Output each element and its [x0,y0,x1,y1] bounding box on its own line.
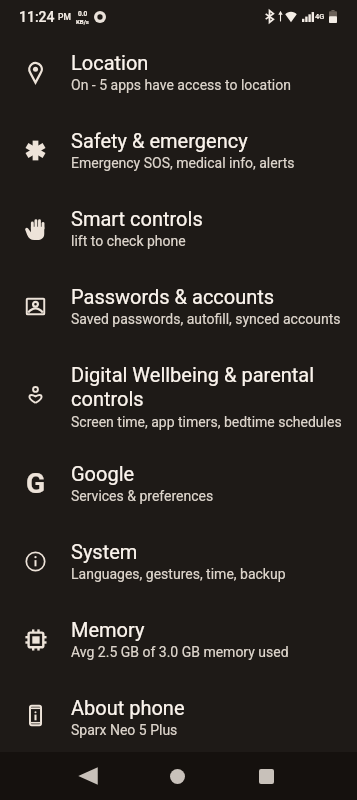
staticText: About phone [71,696,185,719]
staticText: 0.0 [78,10,88,18]
staticText: 11:24 [19,9,55,25]
staticText: Smart controls [71,207,203,230]
staticText: Saved passwords, autofill, synced accoun… [71,311,341,327]
button[interactable]: Home [155,752,200,800]
button[interactable]: Smart controls [0,189,357,267]
staticText: Safety & emergency [71,129,248,152]
button[interactable]: Digital Wellbeing & parental controls [0,345,357,444]
staticText: 4G [315,12,325,21]
staticText: Digital Wellbeing & parental controls [71,363,353,411]
button[interactable]: Location [0,33,357,111]
button[interactable]: About phone [0,678,357,752]
staticText: Memory [71,618,145,641]
staticText: Sparx Neo 5 Plus [71,722,178,738]
staticText: lift to check phone [71,233,186,249]
staticText: Services & preferences [71,488,214,504]
staticText: On - 5 apps have access to location [71,77,291,93]
button[interactable]: Memory [0,600,357,678]
staticText: Screen time, app timers, bedtime schedul… [71,414,342,430]
button[interactable]: Back [66,752,111,800]
staticText: KB/s [76,18,89,25]
staticText: Location [71,51,149,74]
button[interactable]: Safety & emergency [0,111,357,189]
staticText: Avg 2.5 GB of 3.0 GB memory used [71,644,289,660]
staticText: G [26,467,46,500]
staticText: Emergency SOS, medical info, alerts [71,155,295,171]
staticText: Passwords & accounts [71,285,275,308]
button[interactable]: Recent apps [244,752,289,800]
staticText: PM [58,12,71,22]
staticText: System [71,540,138,563]
button[interactable]: G [0,444,357,522]
staticText: Languages, gestures, time, backup [71,566,286,582]
button[interactable]: Passwords & accounts [0,267,357,345]
button[interactable]: System [0,522,357,600]
staticText: Google [71,462,135,485]
